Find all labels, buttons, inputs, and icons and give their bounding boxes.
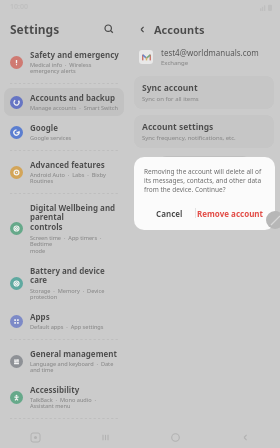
staticText: Apps [30,311,50,322]
staticText: Account settings [142,121,214,133]
button[interactable]: Account settings [134,115,274,148]
staticText: 10:00 [10,2,28,12]
staticText: Default apps · App settings [30,323,104,331]
staticText: Battery and device care [30,265,120,286]
other: Back [134,21,150,37]
staticText: Storage · Memory · Device protection [30,287,120,301]
button[interactable]: Safety and emergency [4,45,124,79]
button[interactable]: Digital Wellbeing and parental controls [4,198,124,259]
button[interactable]: Advanced features [4,155,124,189]
staticText: test4@worldmanuals.com [161,47,259,58]
staticText: Sync on for all items [142,95,199,103]
staticText: Google services [30,134,72,142]
staticText: Accounts [154,22,205,37]
button[interactable]: Apps [4,307,124,335]
button[interactable]: Accessibility [4,380,124,414]
button[interactable]: General management [4,344,124,378]
button[interactable]: Google [4,118,124,146]
staticText: Removing the account will delete all of … [144,167,265,194]
staticText: Sync account [142,82,198,94]
staticText: Safety and emergency [30,49,119,60]
button[interactable]: Search settings [100,20,118,38]
staticText: Manage accounts · Smart Switch [30,104,118,112]
staticText: Cancel [156,208,183,219]
staticText: General management [30,348,117,359]
staticText: Digital Wellbeing and parental controls [30,202,120,233]
button[interactable]: Back [134,14,274,44]
staticText: Medical info · Wireless emergency alerts [30,61,120,75]
button[interactable]: Accounts and backup [4,88,124,116]
button[interactable]: Remove account [157,156,252,175]
staticText: Sync frequency, notifications, etc. [142,134,236,142]
staticText: Google [30,122,59,133]
button[interactable]: Sync account [134,76,274,109]
staticText: Language and keyboard · Date and time [30,360,120,374]
button[interactable]: test4@worldmanuals.com [134,44,274,70]
staticText: Settings [10,21,60,37]
button[interactable]: Edge panel handle [266,211,280,229]
staticText: Remove account [197,208,264,219]
button[interactable]: Cancel [144,202,195,224]
staticText: Advanced features [30,159,105,170]
staticText: Remove account [171,160,238,171]
button[interactable]: Battery and device care [4,261,124,305]
button[interactable]: Remove account [196,202,265,224]
staticText: Screen time · App timers · Bedtime mode [30,234,120,255]
staticText: Exchange [161,59,189,67]
staticText: Accounts and backup [30,92,116,103]
staticText: Accessibility [30,384,80,395]
staticText: Android Auto · Labs · Bixby Routines [30,171,120,185]
staticText: TalkBack · Mono audio · Assistant menu [30,396,120,410]
